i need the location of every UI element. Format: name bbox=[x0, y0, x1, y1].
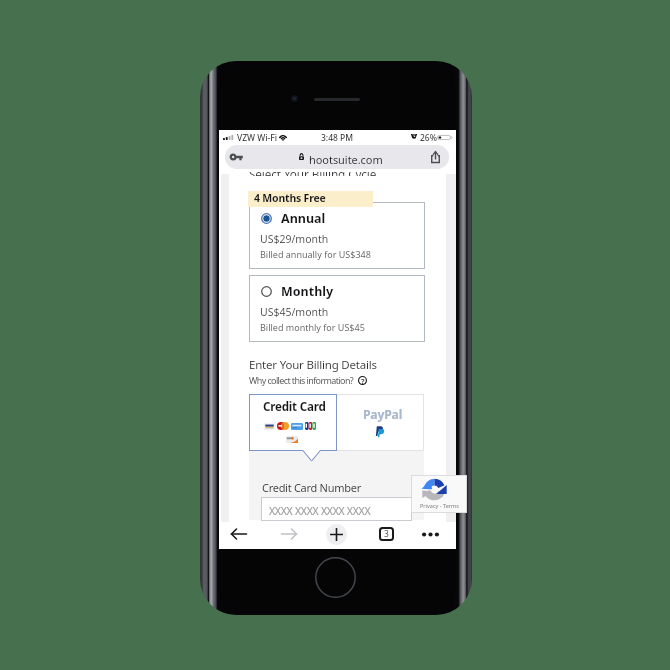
staticText: Select Your Billing Cycle bbox=[249, 172, 377, 176]
button[interactable]: Monthly bbox=[249, 275, 425, 342]
staticText: XXXX XXXX XXXX XXXX bbox=[269, 504, 371, 518]
staticText: Credit Card bbox=[263, 399, 326, 415]
button[interactable]: Tabs bbox=[379, 527, 394, 541]
button[interactable]: PayPal bbox=[336, 394, 424, 451]
staticText: 3:48 PM bbox=[321, 132, 354, 144]
staticText: US$29/month bbox=[260, 232, 329, 246]
button[interactable]: Share bbox=[423, 145, 447, 169]
staticText: Enter Your Billing Details bbox=[249, 357, 377, 373]
button[interactable]: hootsuite.com bbox=[225, 145, 449, 169]
staticText: Credit Card Number bbox=[262, 480, 361, 495]
button[interactable]: Annual bbox=[249, 202, 425, 269]
staticText: 3 bbox=[384, 528, 389, 540]
button[interactable]: New tab bbox=[326, 524, 347, 545]
staticText: Privacy - Terms bbox=[420, 502, 459, 509]
staticText: Why collect this information? bbox=[249, 374, 354, 386]
staticText: US$45/month bbox=[260, 305, 329, 319]
staticText: hootsuite.com bbox=[309, 152, 383, 167]
button[interactable]: Back bbox=[227, 522, 251, 546]
staticText: Monthly bbox=[281, 283, 334, 300]
button[interactable]: More bbox=[418, 522, 442, 546]
staticText: 4 Months Free bbox=[254, 191, 326, 205]
staticText: Billed annually for US$348 bbox=[260, 248, 371, 260]
button[interactable]: Forward bbox=[277, 522, 301, 546]
button[interactable]: Credit Card bbox=[249, 394, 337, 451]
staticText: Annual bbox=[281, 210, 326, 227]
staticText: VZW Wi-Fi bbox=[237, 132, 278, 144]
staticText: Billed monthly for US$45 bbox=[260, 321, 365, 333]
staticText: ? bbox=[361, 376, 365, 385]
staticText: 26% bbox=[420, 132, 437, 144]
staticText: PayPal bbox=[363, 406, 403, 423]
